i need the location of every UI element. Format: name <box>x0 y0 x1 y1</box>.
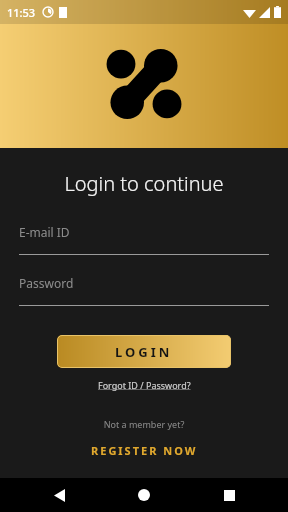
staticText: E-mail ID <box>19 224 70 240</box>
staticText: 11:53 <box>7 5 36 20</box>
button[interactable]: LOGIN <box>57 335 231 368</box>
button[interactable]: Recent apps <box>214 480 244 510</box>
staticText: Password <box>19 275 74 291</box>
button[interactable]: E-mail ID <box>19 224 269 255</box>
staticText: Login to continue <box>0 170 288 197</box>
button[interactable]: Back <box>44 480 74 510</box>
staticText: Not a member yet? <box>0 418 288 430</box>
button[interactable]: REGISTER NOW <box>83 441 206 460</box>
staticText: LOGIN <box>115 343 173 361</box>
button[interactable]: Home <box>129 480 159 510</box>
button[interactable]: Password <box>19 275 269 306</box>
button[interactable]: Forgot ID / Password? <box>92 377 197 393</box>
